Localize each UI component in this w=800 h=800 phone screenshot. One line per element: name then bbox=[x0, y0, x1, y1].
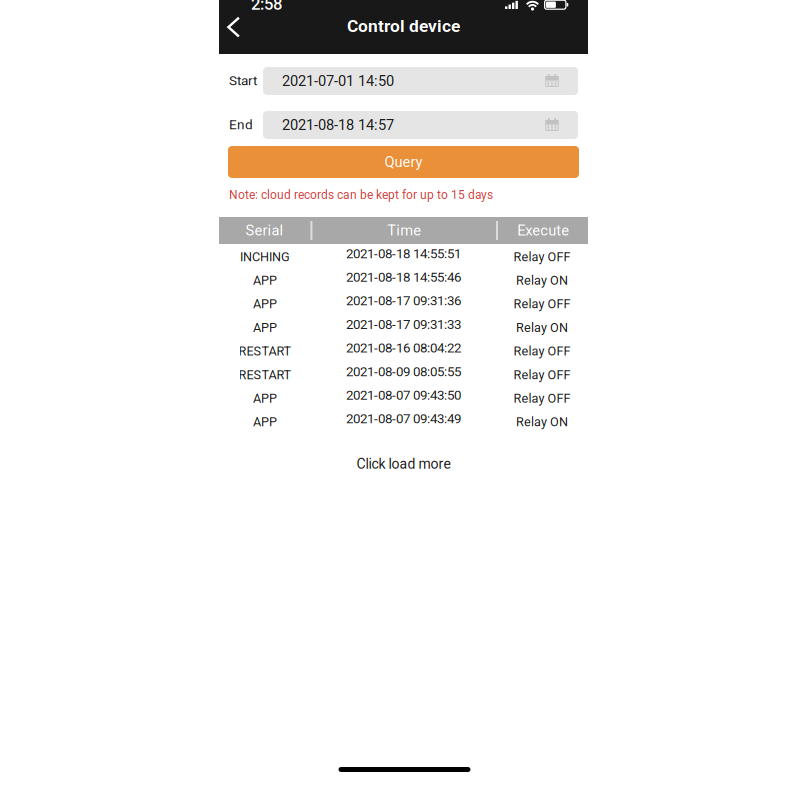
staticText: End bbox=[229, 116, 253, 132]
staticText: 2021-08-07 09:43:50 bbox=[346, 387, 461, 403]
staticText: Start bbox=[229, 72, 257, 88]
staticText: Relay ON bbox=[516, 415, 568, 429]
staticText: INCHING bbox=[240, 249, 290, 264]
staticText: RESTART bbox=[238, 367, 291, 382]
staticText: 2021-08-16 08:04:22 bbox=[346, 340, 461, 356]
button[interactable]: 2021-07-01 14:50 bbox=[263, 67, 578, 95]
staticText: Control device bbox=[347, 16, 460, 36]
staticText: Click load more bbox=[356, 456, 450, 472]
staticText: Relay ON bbox=[516, 320, 568, 335]
staticText: APP bbox=[253, 320, 277, 335]
staticText: 2:58 bbox=[251, 0, 282, 14]
staticText: Relay OFF bbox=[513, 344, 570, 359]
staticText: APP bbox=[253, 415, 277, 429]
staticText: Relay OFF bbox=[513, 297, 570, 311]
staticText: 2021-07-01 14:50 bbox=[282, 72, 394, 90]
staticText: Serial bbox=[245, 222, 283, 239]
staticText: Note: cloud records can be kept for up t… bbox=[229, 188, 493, 202]
button[interactable]: Click load more bbox=[219, 452, 588, 476]
staticText: RESTART bbox=[238, 344, 291, 359]
staticText: APP bbox=[253, 297, 277, 311]
staticText: APP bbox=[253, 273, 277, 288]
staticText: Relay ON bbox=[516, 273, 568, 288]
button[interactable]: 2021-08-18 14:57 bbox=[263, 111, 578, 139]
staticText: Query bbox=[384, 153, 422, 171]
staticText: 2021-08-18 14:55:51 bbox=[346, 246, 461, 261]
staticText: 2021-08-18 14:57 bbox=[282, 116, 394, 134]
button[interactable]: Query bbox=[228, 146, 579, 178]
staticText: APP bbox=[253, 391, 277, 406]
staticText: 2021-08-18 14:55:46 bbox=[346, 269, 461, 285]
staticText: 2021-08-17 09:31:36 bbox=[346, 293, 461, 309]
staticText: Relay OFF bbox=[513, 249, 570, 264]
staticText: Time bbox=[387, 222, 421, 239]
staticText: Relay OFF bbox=[513, 391, 570, 406]
staticText: 2021-08-17 09:31:33 bbox=[346, 317, 461, 332]
staticText: Relay OFF bbox=[513, 367, 570, 382]
staticText: Execute bbox=[517, 222, 569, 239]
staticText: 2021-08-09 08:05:55 bbox=[346, 364, 461, 379]
button[interactable]: Back bbox=[219, 10, 263, 54]
staticText: 2021-08-07 09:43:49 bbox=[346, 411, 461, 427]
